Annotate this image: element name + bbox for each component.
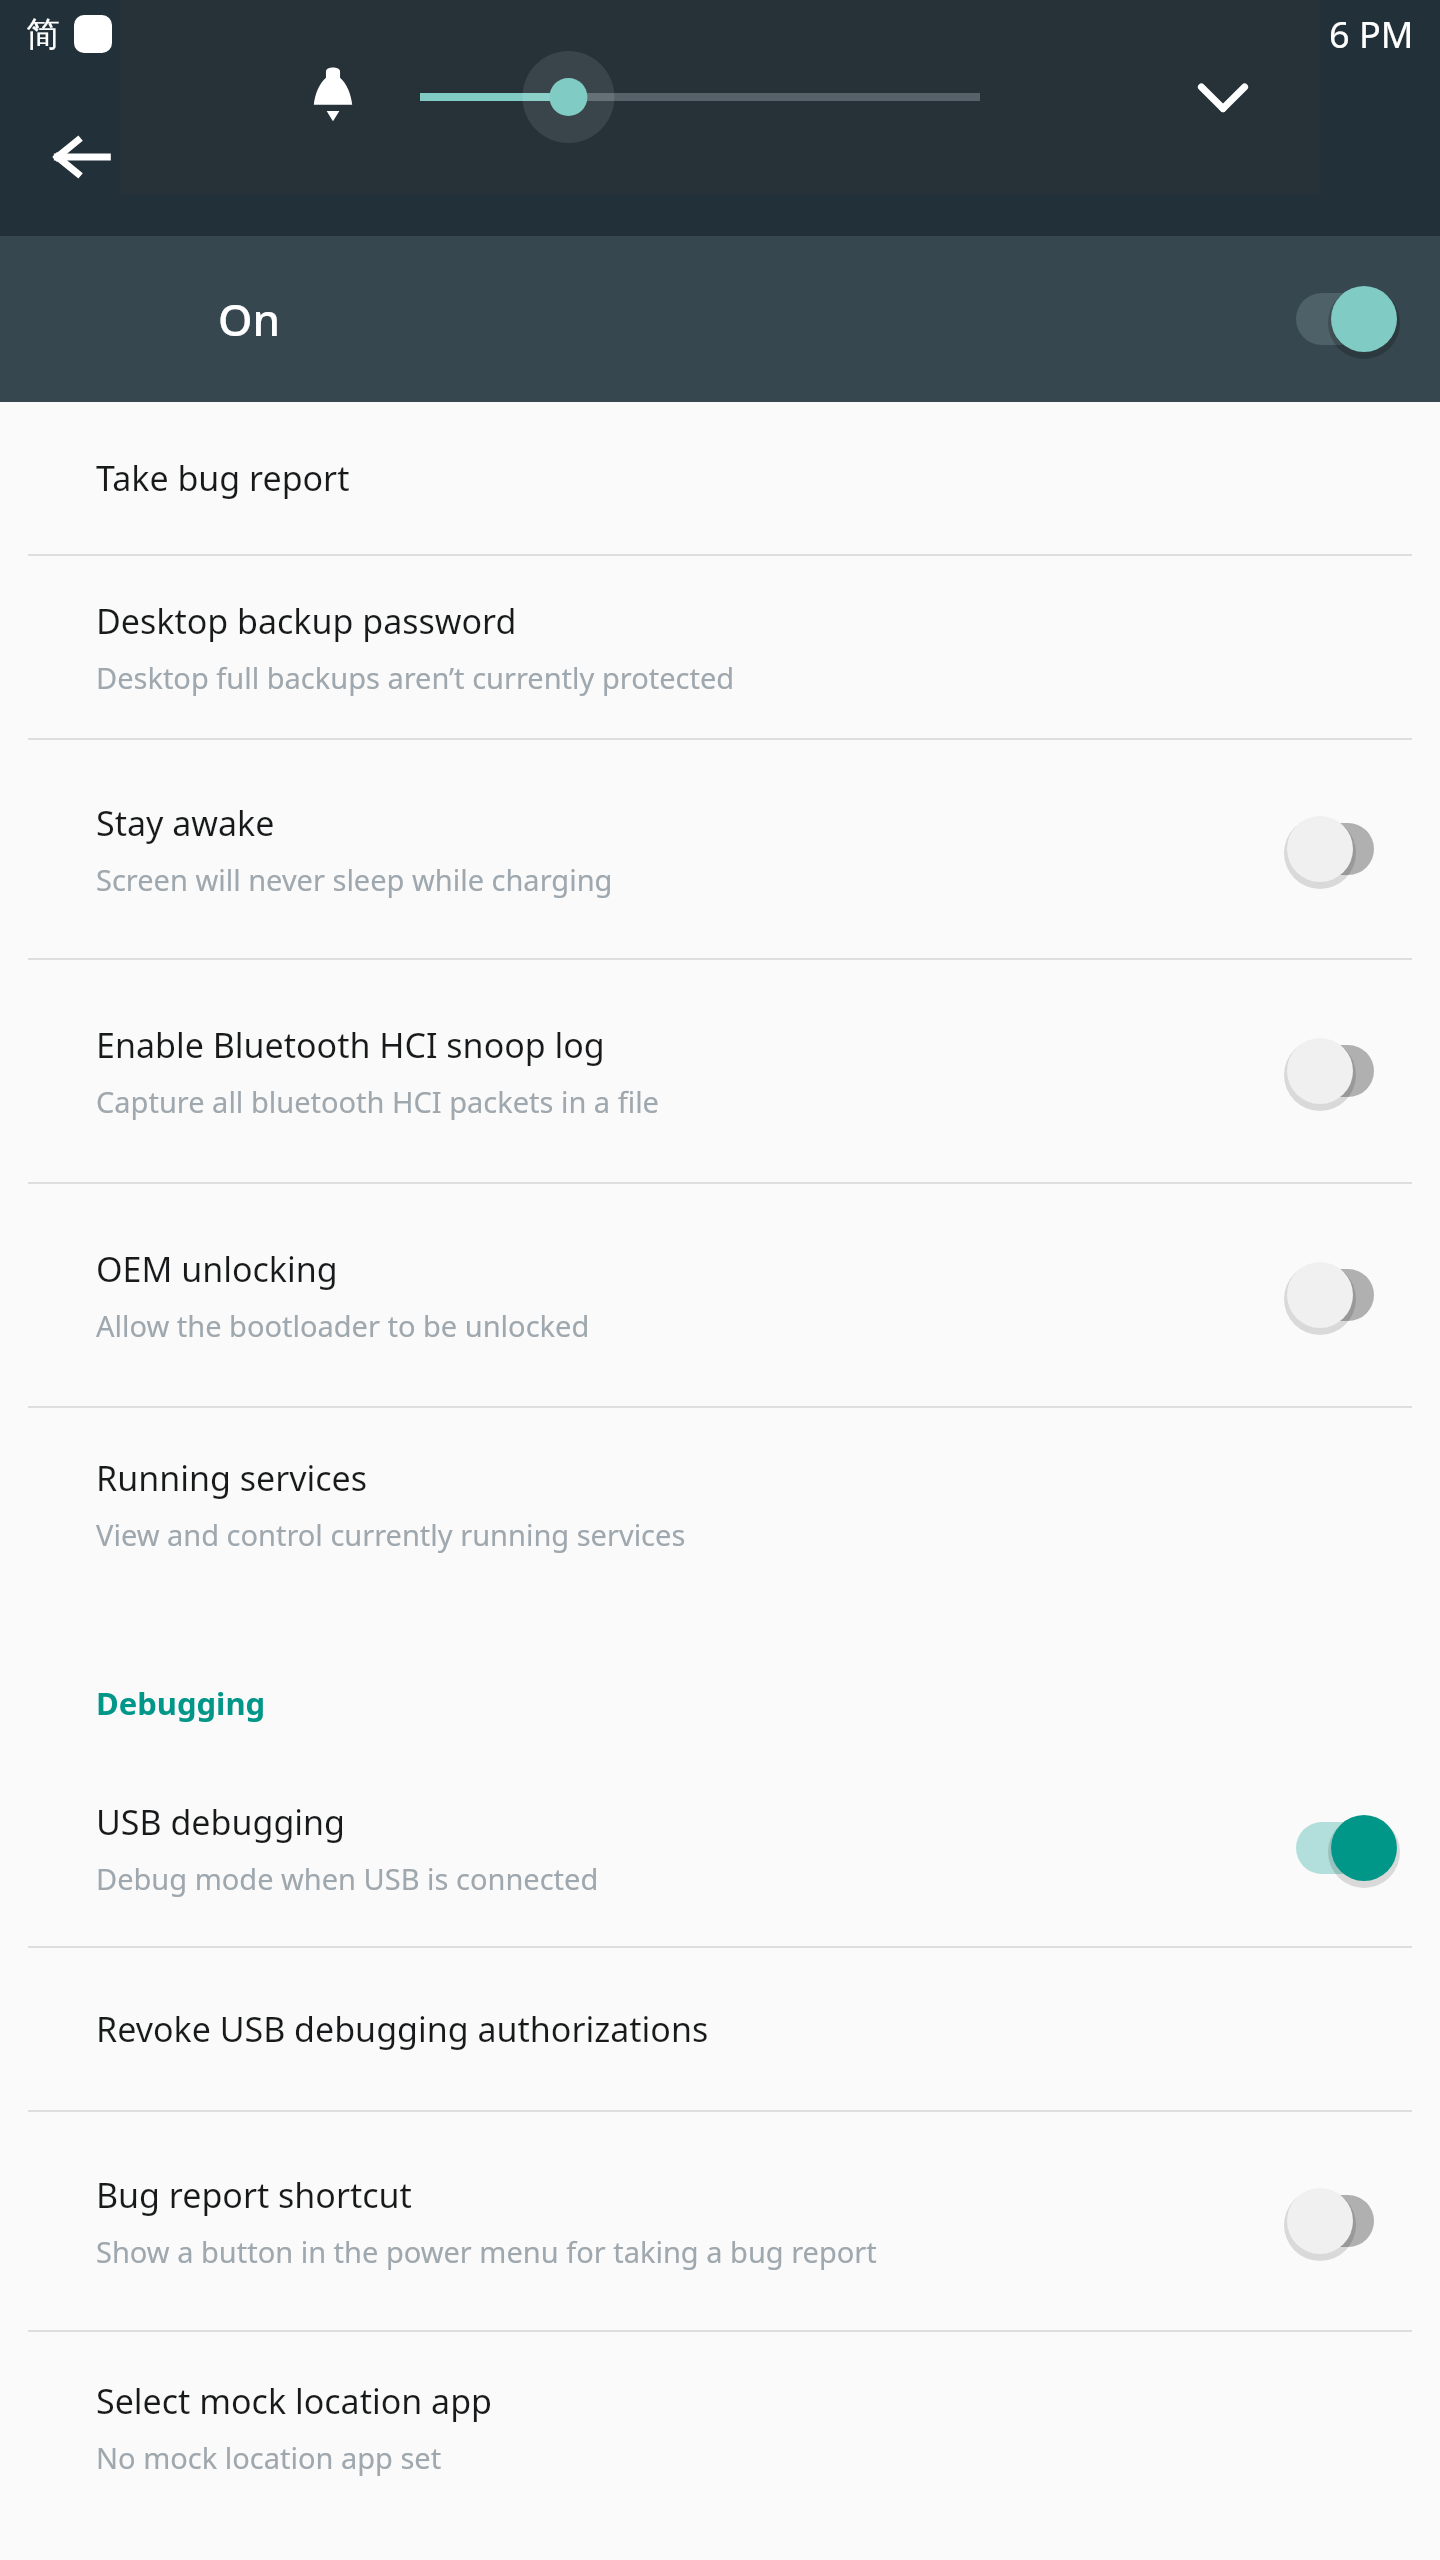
staticText: View and control currently running servi…	[96, 1515, 686, 1554]
staticText: Select mock location app	[96, 2378, 492, 2424]
staticText: Enable Bluetooth HCI snoop log	[96, 1022, 605, 1068]
staticText: Allow the bootloader to be unlocked	[96, 1306, 590, 1345]
button[interactable]: OEM unlocking	[0, 1184, 1440, 1406]
staticText: USB debugging	[96, 1799, 345, 1845]
button[interactable]: Off	[1290, 809, 1400, 889]
button[interactable]: Volume slider	[420, 22, 980, 172]
staticText: Take bug report	[96, 455, 350, 501]
button[interactable]: Off	[1290, 2181, 1400, 2261]
button[interactable]: On	[1290, 1808, 1400, 1888]
button[interactable]: Off	[1290, 1255, 1400, 1335]
button[interactable]: Ringer volume	[270, 34, 396, 160]
staticText: Bug report shortcut	[96, 2172, 412, 2218]
staticText: Capture all bluetooth HCI packets in a f…	[96, 1082, 659, 1121]
button[interactable]: Desktop backup password	[0, 556, 1440, 738]
button[interactable]: Off	[1290, 1031, 1400, 1111]
button[interactable]: Revoke USB debugging authorizations	[0, 1948, 1440, 2110]
staticText: 6 PM	[1329, 10, 1414, 59]
staticText: No mock location app set	[96, 2438, 442, 2477]
button[interactable]: Stay awake	[0, 740, 1440, 958]
staticText: Running services	[96, 1455, 368, 1501]
button[interactable]: USB debugging	[0, 1750, 1440, 1946]
staticText: Screen will never sleep while charging	[96, 860, 613, 899]
staticText: Debug mode when USB is connected	[96, 1859, 599, 1898]
button[interactable]: Enable Bluetooth HCI snoop log	[0, 960, 1440, 1182]
button[interactable]: Take bug report	[0, 402, 1440, 554]
staticText: Revoke USB debugging authorizations	[96, 2006, 709, 2052]
button[interactable]: Developer options on	[1290, 279, 1400, 359]
staticText: OEM unlocking	[96, 1246, 338, 1292]
staticText: 简	[26, 13, 60, 56]
staticText: Debugging	[96, 1682, 266, 1724]
staticText: Desktop backup password	[96, 598, 517, 644]
staticText: Desktop full backups aren’t currently pr…	[96, 658, 735, 697]
staticText: Show a button in the power menu for taki…	[96, 2232, 877, 2271]
staticText: On	[218, 289, 281, 349]
button[interactable]: Bug report shortcut	[0, 2112, 1440, 2330]
button[interactable]: Select mock location app	[0, 2332, 1440, 2522]
button[interactable]: Navigate up	[26, 100, 140, 214]
staticText: Stay awake	[96, 800, 275, 846]
button[interactable]: Expand volume controls	[1160, 34, 1286, 160]
button[interactable]: Running services	[0, 1408, 1440, 1600]
